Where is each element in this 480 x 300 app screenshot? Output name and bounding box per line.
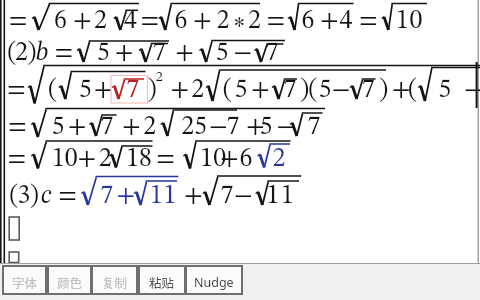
button[interactable]: 粘贴 bbox=[138, 265, 186, 295]
staticText: Nudge bbox=[194, 274, 234, 291]
button[interactable]: 复制 bbox=[91, 265, 138, 295]
button[interactable]: 字体 bbox=[2, 265, 47, 295]
staticText: 复制 bbox=[102, 273, 128, 291]
button[interactable]: 颜色 bbox=[47, 265, 92, 295]
staticText: 颜色 bbox=[57, 273, 83, 291]
staticText: 字体 bbox=[12, 273, 38, 291]
button[interactable]: Nudge bbox=[185, 265, 243, 295]
staticText: 粘贴 bbox=[149, 273, 175, 291]
